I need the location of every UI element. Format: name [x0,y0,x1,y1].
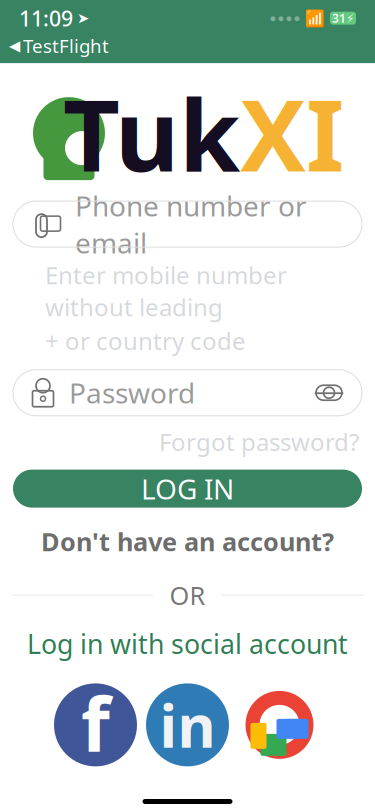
staticText: Password [69,374,195,411]
staticText: Phone number or email [75,187,307,261]
staticText: ◀ [9,37,20,54]
staticText: Don't have an account? [41,525,334,558]
staticText: f [81,673,110,772]
staticText: TestFlight [23,33,109,58]
button[interactable]: LOG IN [13,470,362,508]
staticText: Forgot password? [159,426,359,458]
button[interactable]: Phone number or email [13,201,362,247]
staticText: OR [169,578,205,612]
button[interactable]: Don't have an account? [41,525,334,558]
staticText: XI [240,68,344,199]
staticText: Log in with social account [27,626,348,661]
button[interactable]: Log in with Facebook [54,673,137,776]
staticText: Enter mobile number without leading [45,259,287,323]
staticText: ● ● ● ● [270,14,300,22]
button[interactable]: Log in with Google [238,683,321,766]
staticText: in [159,686,215,764]
staticText: LOG IN [141,470,234,507]
staticText: 📶 [305,9,325,27]
staticText: ➤ [77,10,89,26]
button[interactable]: Forgot password? [159,426,359,458]
staticText: 31⚡︎ [332,10,354,26]
button[interactable]: Password [13,370,362,416]
staticText: + or country code [45,325,246,357]
staticText: 11:09 [19,4,73,32]
staticText: Tuk [63,68,240,199]
button[interactable]: Log in with LinkedIn [146,683,229,766]
